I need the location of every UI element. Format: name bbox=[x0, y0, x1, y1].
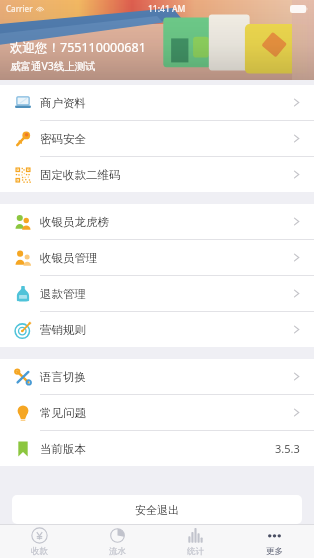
staticText: 11:41 AM bbox=[148, 3, 186, 15]
button[interactable]: 收银员龙虎榜 bbox=[0, 204, 314, 239]
staticText: 当前版本 bbox=[40, 442, 86, 456]
staticText: 欢迎您！755110000681 bbox=[10, 39, 146, 56]
staticText: 密码安全 bbox=[40, 132, 86, 146]
button[interactable]: 固定收款二维码 bbox=[0, 157, 314, 192]
staticText: 收银员管理 bbox=[40, 251, 98, 265]
staticText: 退款管理 bbox=[40, 287, 86, 301]
staticText: 商户资料 bbox=[40, 96, 86, 110]
button[interactable]: 退款管理 bbox=[0, 276, 314, 311]
button[interactable]: 常见问题 bbox=[0, 395, 314, 430]
staticText: 威富通V3线上测试 bbox=[10, 59, 96, 73]
staticText: 安全退出 bbox=[135, 503, 179, 517]
button[interactable]: 当前版本 bbox=[0, 431, 314, 466]
button[interactable]: 统计 bbox=[156, 525, 235, 558]
button[interactable]: 商户资料 bbox=[0, 85, 314, 120]
staticText: 3.5.3 bbox=[275, 441, 300, 456]
button[interactable]: 收银员管理 bbox=[0, 240, 314, 275]
staticText: 固定收款二维码 bbox=[40, 168, 121, 182]
staticText: 收款 bbox=[31, 546, 48, 557]
button[interactable]: 营销规则 bbox=[0, 312, 314, 347]
button[interactable]: 密码安全 bbox=[0, 121, 314, 156]
staticText: 收银员龙虎榜 bbox=[40, 215, 109, 229]
staticText: 统计 bbox=[187, 546, 204, 557]
staticText: 常见问题 bbox=[40, 406, 86, 420]
button[interactable]: 安全退出 bbox=[12, 495, 302, 524]
button[interactable]: 收款 bbox=[0, 525, 78, 558]
button[interactable]: 语言切换 bbox=[0, 359, 314, 394]
staticText: 更多 bbox=[266, 546, 283, 557]
staticText: 营销规则 bbox=[40, 323, 86, 337]
staticText: Carrier bbox=[6, 3, 33, 14]
staticText: 流水 bbox=[109, 546, 126, 557]
staticText: 语言切换 bbox=[40, 370, 86, 384]
button[interactable]: 流水 bbox=[78, 525, 156, 558]
button[interactable]: 更多 bbox=[235, 525, 314, 558]
